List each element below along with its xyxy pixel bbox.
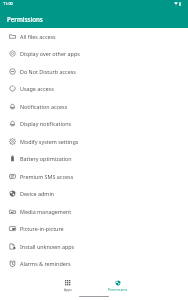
staticText: Media management <box>20 208 72 215</box>
staticText: Usage access <box>20 85 54 92</box>
button[interactable]: Modify system settings <box>0 132 188 150</box>
staticText: Display over other apps <box>20 50 80 57</box>
staticText: Device admin <box>20 190 55 197</box>
button[interactable]: Do Not Disturb access <box>0 62 188 80</box>
button[interactable]: Usage access <box>0 79 188 97</box>
button[interactable]: Picture-in-picture <box>0 219 188 237</box>
staticText: Modify system settings <box>20 138 79 145</box>
staticText: Battery optimization <box>20 155 72 162</box>
button[interactable]: Display notifications <box>0 114 188 132</box>
staticText: Permissions <box>7 15 43 23</box>
staticText: 11:00 <box>3 1 13 6</box>
button[interactable]: Install unknown apps <box>0 237 188 255</box>
button[interactable]: Alarms & reminders <box>0 254 188 272</box>
staticText: Display notifications <box>20 120 72 127</box>
staticText: Permissions <box>108 287 128 292</box>
button[interactable]: Notification access <box>0 97 188 115</box>
button[interactable]: Premium SMS access <box>0 167 188 185</box>
button[interactable]: All files access <box>0 27 188 45</box>
button[interactable]: Media management <box>0 202 188 220</box>
staticText: Apps <box>64 287 72 292</box>
button[interactable]: Battery optimization <box>0 149 188 167</box>
staticText: Picture-in-picture <box>20 225 64 232</box>
staticText: Install unknown apps <box>20 243 75 250</box>
button[interactable]: Device admin <box>0 184 188 202</box>
button[interactable]: Permissions <box>98 272 138 300</box>
staticText: Notification access <box>20 103 68 110</box>
staticText: Alarms & reminders <box>20 260 71 267</box>
button[interactable]: Display over other apps <box>0 44 188 62</box>
staticText: Do Not Disturb access <box>20 68 76 75</box>
staticText: Premium SMS access <box>20 173 74 180</box>
staticText: All files access <box>20 33 56 40</box>
button[interactable]: Apps <box>52 272 83 300</box>
